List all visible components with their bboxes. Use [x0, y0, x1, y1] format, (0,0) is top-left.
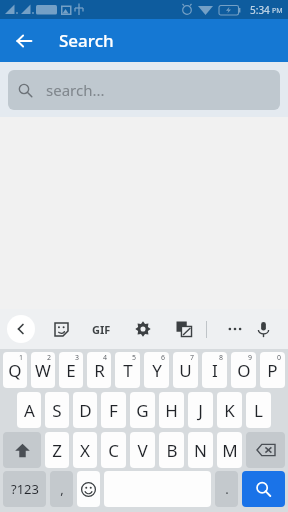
staticText: W: [35, 359, 51, 382]
staticText: H: [165, 399, 178, 422]
staticText: R: [94, 359, 105, 382]
button[interactable]: T: [115, 352, 140, 388]
button[interactable]: R: [87, 352, 111, 388]
button[interactable]: F: [101, 392, 126, 428]
button[interactable]: U: [173, 352, 198, 388]
staticText: A: [24, 399, 35, 422]
button[interactable]: E: [59, 352, 83, 388]
button[interactable]: W: [31, 352, 55, 388]
staticText: K: [224, 399, 235, 422]
staticText: Q: [8, 359, 22, 382]
button[interactable]: GIF: [85, 313, 117, 345]
staticText: 2: [47, 353, 52, 363]
staticText: V: [137, 439, 148, 462]
button[interactable]: Z: [45, 432, 69, 468]
staticText: J: [198, 399, 203, 422]
staticText: 3: [75, 353, 80, 363]
button[interactable]: Translate: [169, 314, 199, 344]
staticText: ,: [60, 480, 64, 498]
staticText: S: [52, 399, 62, 422]
staticText: 9: [248, 353, 253, 363]
staticText: 4: [103, 353, 108, 363]
button[interactable]: Settings: [128, 314, 158, 344]
button[interactable]: [3, 432, 41, 468]
staticText: .: [225, 480, 229, 498]
button[interactable]: Collapse toolbar: [7, 315, 35, 343]
button[interactable]: [77, 471, 100, 507]
staticText: Y: [152, 359, 162, 382]
staticText: D: [79, 399, 92, 422]
button[interactable]: G: [130, 392, 155, 428]
staticText: C: [108, 439, 119, 462]
staticText: O: [237, 359, 251, 382]
button[interactable]: N: [188, 432, 213, 468]
button[interactable]: Y: [144, 352, 169, 388]
staticText: Z: [52, 439, 62, 462]
button[interactable]: M: [217, 432, 242, 468]
staticText: 8: [219, 353, 224, 363]
staticText: M: [222, 439, 238, 462]
button[interactable]: ,: [50, 471, 73, 507]
staticText: F: [109, 399, 118, 422]
staticText: E: [66, 359, 76, 382]
staticText: I: [212, 359, 218, 382]
staticText: X: [80, 439, 90, 462]
staticText: U: [179, 359, 192, 382]
button[interactable]: H: [159, 392, 184, 428]
button[interactable]: K: [217, 392, 242, 428]
staticText: G: [136, 399, 149, 422]
staticText: search...: [46, 80, 105, 100]
staticText: B: [166, 439, 178, 462]
button[interactable]: B: [159, 432, 184, 468]
button[interactable]: Stickers: [46, 314, 76, 344]
staticText: L: [254, 399, 263, 422]
button[interactable]: O: [231, 352, 256, 388]
staticText: Search: [59, 29, 114, 52]
staticText: PM: [272, 6, 283, 16]
button[interactable]: .: [215, 471, 238, 507]
button[interactable]: C: [101, 432, 126, 468]
button[interactable]: L: [246, 392, 271, 428]
staticText: N: [194, 439, 207, 462]
button[interactable]: ?123: [3, 471, 46, 507]
button[interactable]: J: [188, 392, 213, 428]
button[interactable]: D: [73, 392, 97, 428]
staticText: 7: [190, 353, 195, 363]
staticText: 5: [132, 353, 137, 363]
staticText: ?123: [11, 480, 39, 498]
staticText: 1: [19, 353, 24, 363]
button[interactable]: Q: [3, 352, 27, 388]
staticText: P: [267, 359, 278, 382]
button[interactable]: Voice input: [250, 314, 277, 344]
staticText: T: [123, 359, 133, 382]
staticText: 0: [277, 353, 282, 363]
button[interactable]: S: [45, 392, 69, 428]
button[interactable]: X: [73, 432, 97, 468]
button[interactable]: search...: [8, 70, 280, 110]
staticText: 5:34: [250, 3, 270, 17]
button[interactable]: [242, 471, 285, 507]
staticText: GIF: [92, 322, 111, 337]
button[interactable]: V: [130, 432, 155, 468]
button[interactable]: More options: [220, 314, 250, 344]
staticText: 6: [161, 353, 166, 363]
button[interactable]: Back: [0, 19, 48, 62]
button[interactable]: [246, 432, 285, 468]
button[interactable]: I: [202, 352, 227, 388]
button[interactable]: A: [17, 392, 41, 428]
button[interactable]: P: [260, 352, 285, 388]
